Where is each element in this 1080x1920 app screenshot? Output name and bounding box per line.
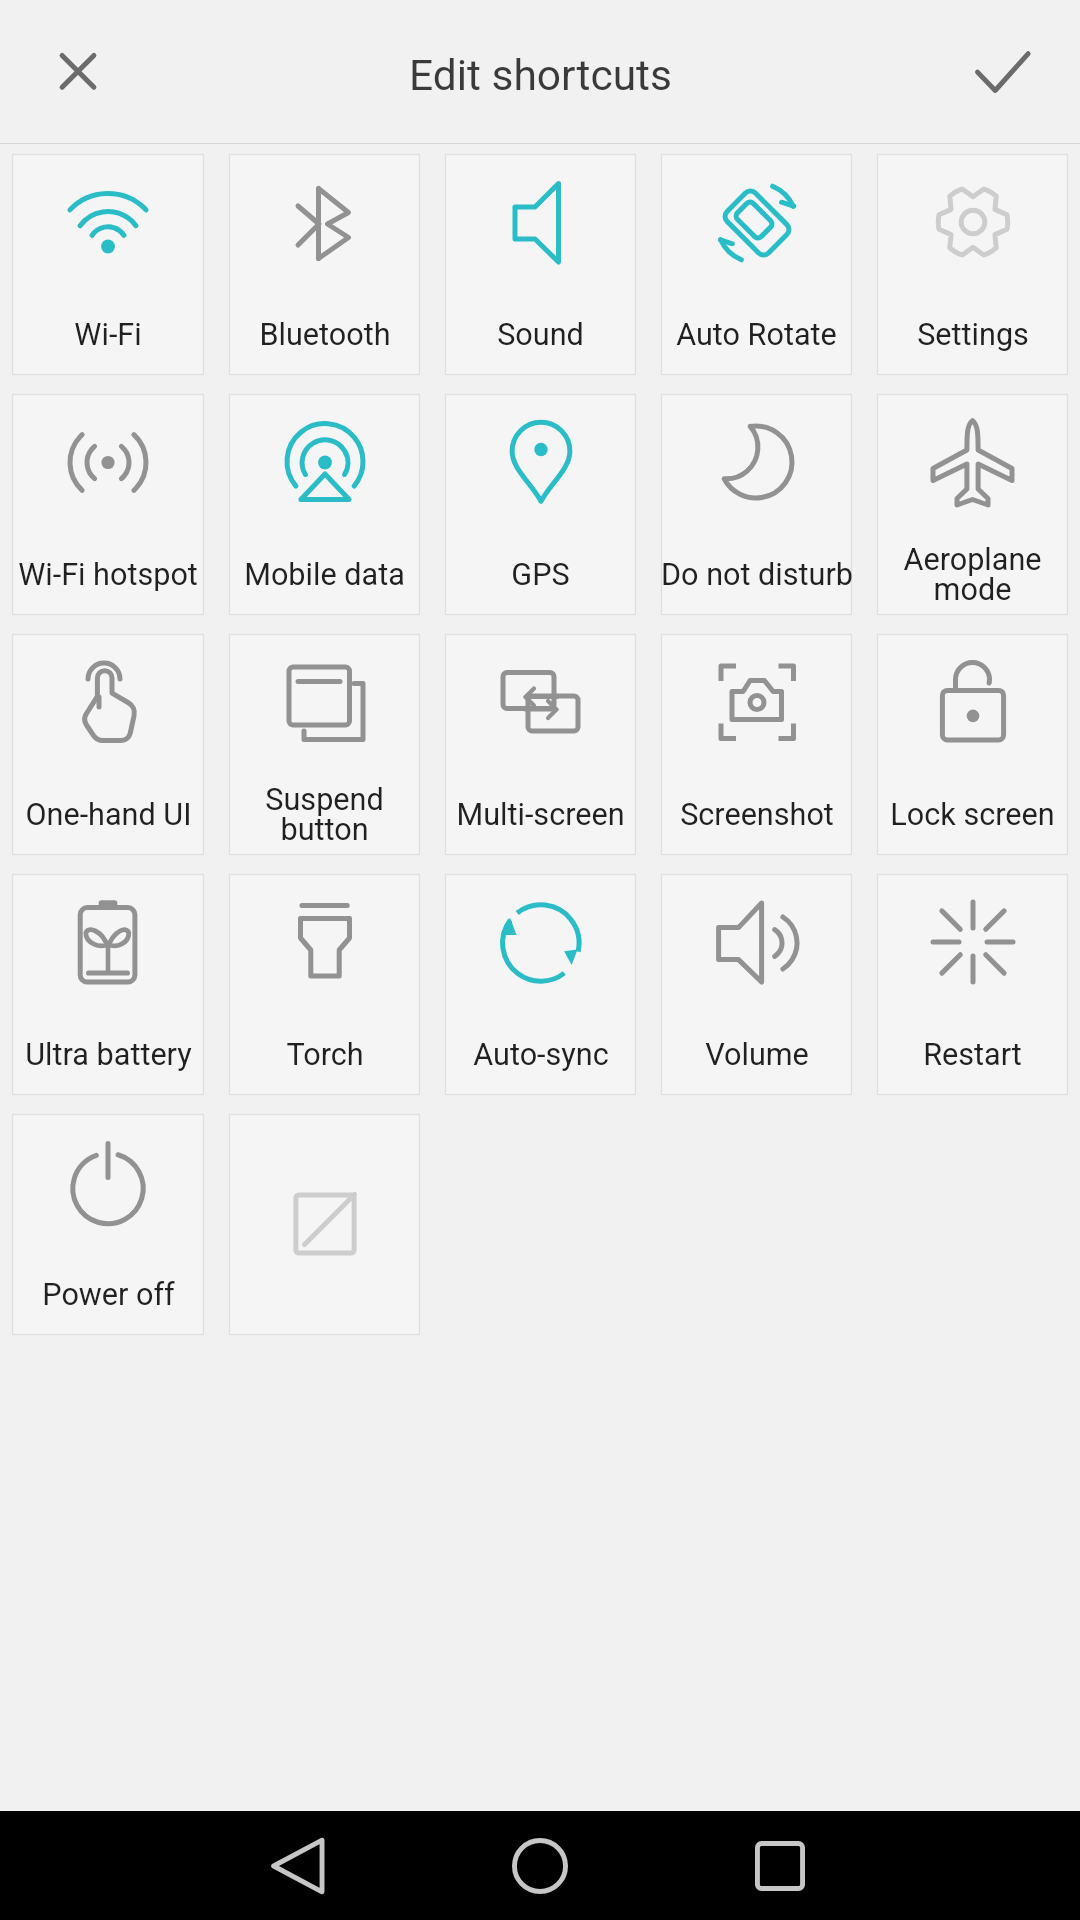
button[interactable]: Restart: [877, 874, 1068, 1095]
button[interactable]: Mobile data: [229, 394, 420, 615]
staticText: Wi-Fi hotspot: [18, 557, 198, 593]
staticText: Wi-Fi: [74, 317, 142, 353]
button[interactable]: Aeroplane mode: [877, 394, 1068, 615]
button[interactable]: One-hand UI: [12, 634, 204, 855]
staticText: Sound: [497, 317, 584, 353]
staticText: One-hand UI: [25, 797, 192, 833]
button[interactable]: Back: [240, 1811, 360, 1920]
staticText: GPS: [511, 557, 570, 593]
button[interactable]: Lock screen: [877, 634, 1068, 855]
staticText: Ultra battery: [25, 1037, 192, 1073]
button[interactable]: Power off: [12, 1114, 204, 1335]
button[interactable]: Bluetooth: [229, 154, 420, 375]
staticText: Screenshot: [680, 797, 834, 833]
staticText: Aeroplane mode: [903, 542, 1042, 608]
button[interactable]: Recents: [720, 1811, 840, 1920]
button[interactable]: Settings: [877, 154, 1068, 375]
button[interactable]: [229, 1114, 420, 1335]
staticText: Restart: [923, 1037, 1022, 1073]
staticText: Power off: [42, 1277, 175, 1313]
button[interactable]: Do not disturb: [661, 394, 852, 615]
staticText: Auto-sync: [473, 1037, 609, 1073]
staticText: Bluetooth: [259, 317, 391, 353]
staticText: Suspend button: [265, 782, 384, 848]
button[interactable]: Torch: [229, 874, 420, 1095]
staticText: Torch: [286, 1037, 364, 1073]
staticText: Multi-screen: [456, 797, 625, 833]
button[interactable]: GPS: [445, 394, 636, 615]
button[interactable]: Sound: [445, 154, 636, 375]
staticText: Do not disturb: [661, 557, 853, 593]
button[interactable]: Close: [36, 30, 120, 114]
button[interactable]: Suspend button: [229, 634, 420, 855]
button[interactable]: Volume: [661, 874, 852, 1095]
staticText: Volume: [705, 1037, 809, 1073]
staticText: Auto Rotate: [676, 317, 837, 353]
button[interactable]: Auto Rotate: [661, 154, 852, 375]
button[interactable]: Ultra battery: [12, 874, 204, 1095]
button[interactable]: Home: [480, 1811, 600, 1920]
staticText: Mobile data: [244, 557, 405, 593]
staticText: Lock screen: [890, 797, 1055, 833]
button[interactable]: Wi-Fi: [12, 154, 204, 375]
button[interactable]: Multi-screen: [445, 634, 636, 855]
button[interactable]: Done: [960, 30, 1044, 114]
staticText: Edit shortcuts: [409, 51, 672, 101]
staticText: Settings: [917, 317, 1029, 353]
button[interactable]: Wi-Fi hotspot: [12, 394, 204, 615]
button[interactable]: Screenshot: [661, 634, 852, 855]
button[interactable]: Auto-sync: [445, 874, 636, 1095]
